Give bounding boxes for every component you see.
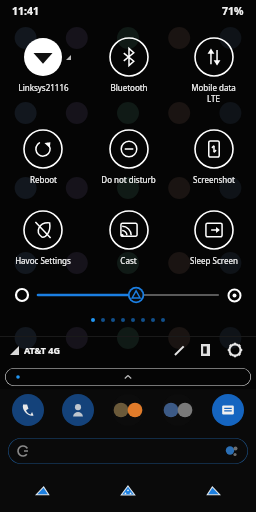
staticText: 71% — [222, 4, 244, 18]
button[interactable]: Recents — [196, 478, 230, 504]
staticText: Screenshot — [193, 174, 235, 185]
staticText: Cast — [120, 255, 137, 266]
button[interactable]: Phone — [12, 394, 44, 426]
button[interactable]: Linksys21116 — [0, 34, 86, 95]
staticText: Reboot — [30, 174, 57, 185]
staticText: Mobile data — [191, 82, 236, 93]
button[interactable]: Sleep Screen — [171, 207, 256, 268]
button[interactable]: Folder — [112, 394, 144, 426]
button[interactable]: Cast — [86, 207, 171, 268]
staticText: AT&T 4G — [24, 344, 61, 356]
staticText: Havoc Settings — [15, 255, 71, 266]
button[interactable]: Contacts — [62, 394, 94, 426]
button[interactable]: Back — [26, 478, 60, 504]
button[interactable]: Havoc Settings — [0, 207, 86, 268]
staticText: Linksys21116 — [18, 82, 69, 93]
button[interactable]: Folder — [162, 394, 194, 426]
staticText: Bluetooth — [110, 82, 148, 93]
button[interactable]: Reboot — [0, 126, 86, 187]
button[interactable]: Messages — [212, 394, 244, 426]
button[interactable]: Do not disturb — [86, 126, 171, 187]
button[interactable]: Search — [8, 438, 248, 464]
staticText: LTE — [207, 93, 220, 104]
staticText: 11:41 — [12, 4, 39, 18]
button[interactable]: Expand notification shade — [5, 368, 251, 386]
button[interactable]: Mobile data — [171, 34, 256, 106]
button[interactable]: Bluetooth — [86, 34, 171, 95]
button[interactable]: Home — [111, 478, 145, 504]
button[interactable]: Brightness — [38, 285, 218, 305]
button[interactable]: Screenshot — [171, 126, 256, 187]
staticText: Sleep Screen — [190, 255, 238, 266]
button[interactable]: Auto brightness — [14, 287, 30, 303]
button[interactable]: Edit tiles — [168, 339, 190, 361]
staticText: Do not disturb — [101, 174, 156, 185]
button[interactable]: Switch user — [196, 339, 218, 361]
button[interactable]: Settings — [224, 339, 246, 361]
button[interactable]: Brightness mode — [226, 287, 242, 303]
